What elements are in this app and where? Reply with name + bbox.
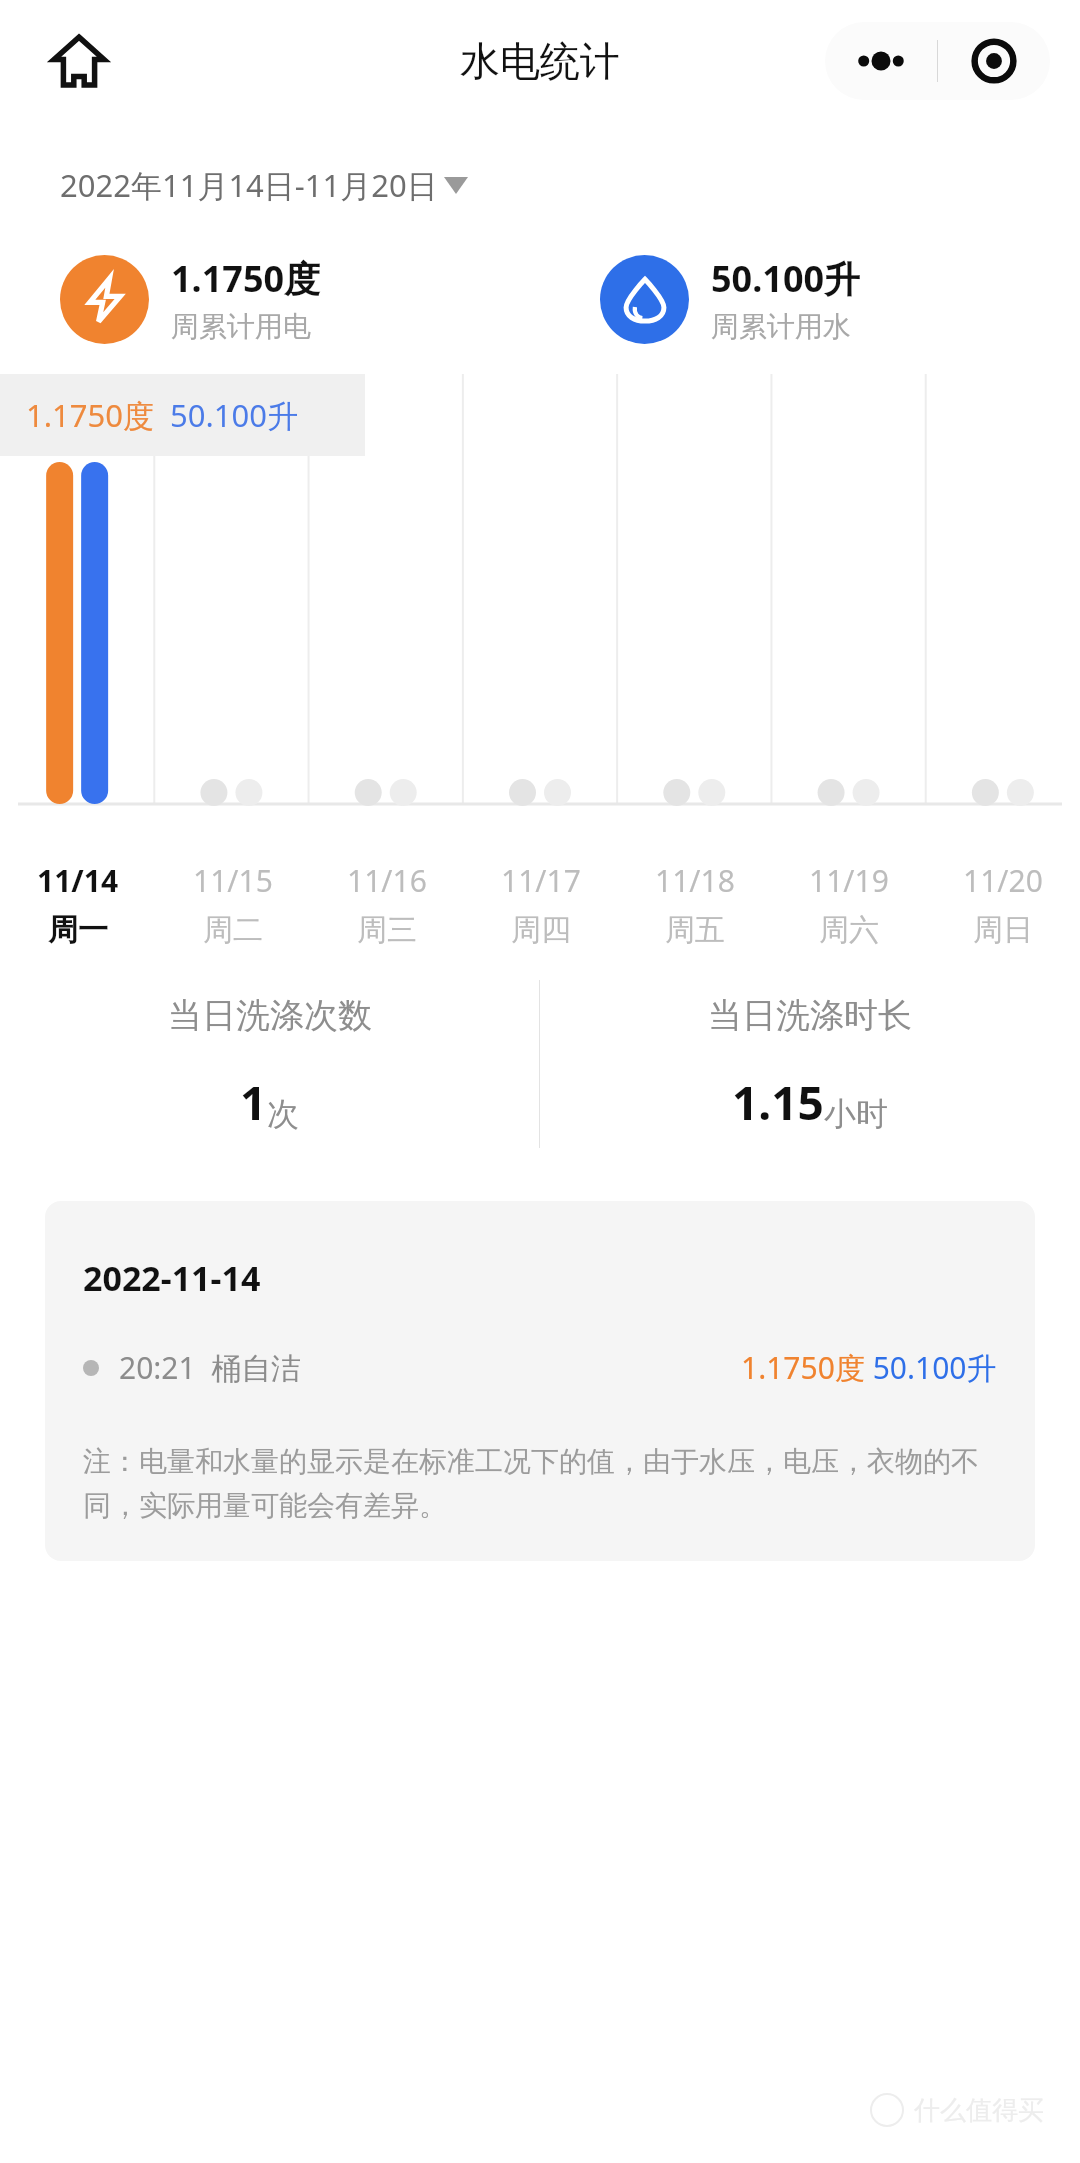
button[interactable]: More bbox=[825, 22, 937, 100]
staticText: 注：电量和水量的显示是在标准工况下的值，由于水压，电压，衣物的不同，实际用量可能… bbox=[83, 1444, 997, 1523]
button[interactable]: 50.100升 bbox=[540, 254, 1080, 344]
button[interactable]: 当日洗涤时长 bbox=[540, 994, 1080, 1134]
staticText: 当日洗涤次数 bbox=[168, 994, 372, 1037]
button[interactable]: 11/14 bbox=[0, 860, 155, 949]
button[interactable]: 2022-11-14 bbox=[45, 1201, 1035, 1561]
staticText: 当日洗涤时长 bbox=[708, 994, 912, 1037]
staticText: 周累计用水 bbox=[711, 309, 851, 344]
staticText: 周六 bbox=[819, 911, 879, 949]
button[interactable]: 11/15 bbox=[155, 860, 310, 949]
staticText: 周累计用电 bbox=[171, 309, 311, 344]
staticText: 1.1750度 bbox=[26, 394, 154, 436]
staticText: 周一 bbox=[48, 911, 108, 949]
button[interactable]: Close bbox=[938, 22, 1050, 100]
staticText: 周四 bbox=[511, 911, 571, 949]
staticText: 11/19 bbox=[809, 860, 889, 901]
staticText: 20:21 桶自洁 bbox=[119, 1347, 302, 1388]
button[interactable]: 11/20 bbox=[926, 860, 1080, 949]
button[interactable]: Home bbox=[42, 24, 116, 98]
staticText: 小时 bbox=[824, 1094, 888, 1134]
staticText: 周三 bbox=[357, 911, 417, 949]
staticText: 周二 bbox=[203, 911, 263, 949]
staticText: 2022-11-14 bbox=[83, 1255, 261, 1301]
button[interactable]: 2022年11月14日-11月20日 bbox=[60, 164, 470, 206]
staticText: 次 bbox=[267, 1094, 299, 1134]
staticText: 11/15 bbox=[193, 860, 273, 901]
staticText: 11/17 bbox=[501, 860, 581, 901]
staticText: 11/20 bbox=[963, 860, 1043, 901]
staticText: 1.1750度 50.100升 bbox=[741, 1347, 997, 1388]
staticText: 50.100升 bbox=[711, 254, 861, 303]
button[interactable]: 当日洗涤次数 bbox=[0, 994, 539, 1134]
staticText: 2022年11月14日-11月20日 bbox=[60, 164, 438, 206]
staticText: 50.100升 bbox=[170, 394, 298, 436]
staticText: 11/14 bbox=[37, 860, 119, 901]
staticText: 1 bbox=[240, 1071, 267, 1134]
staticText: 11/16 bbox=[347, 860, 427, 901]
staticText: 水电统计 bbox=[460, 36, 620, 86]
button[interactable]: 11/18 bbox=[618, 860, 772, 949]
button[interactable]: 1.1750度 bbox=[0, 254, 540, 344]
button[interactable]: 11/16 bbox=[310, 860, 464, 949]
button[interactable]: 11/17 bbox=[464, 860, 618, 949]
staticText: 11/18 bbox=[655, 860, 735, 901]
staticText: 1.1750度 bbox=[171, 254, 321, 303]
staticText: 周日 bbox=[973, 911, 1033, 949]
button[interactable]: 11/19 bbox=[772, 860, 926, 949]
staticText: 周五 bbox=[665, 911, 725, 949]
staticText: 1.15 bbox=[732, 1071, 824, 1134]
staticText: 什么值得买 bbox=[914, 2094, 1044, 2127]
